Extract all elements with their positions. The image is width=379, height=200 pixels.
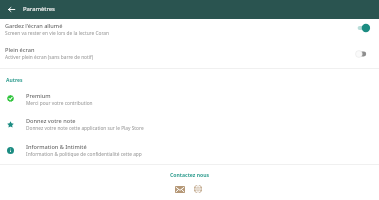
staticText: Donnez votre note [26, 117, 76, 125]
staticText: Premium [26, 92, 51, 100]
staticText: Information & Intimité [26, 143, 87, 151]
button[interactable]: Toggle on [352, 20, 374, 36]
staticText: Contactez nous [0, 172, 379, 179]
staticText: Information & politique de confidentiali… [26, 151, 142, 158]
button[interactable]: Information & Intimité [26, 143, 361, 158]
staticText: Donnez votre note cette application sur … [26, 125, 144, 132]
button[interactable]: Toggle off [352, 46, 374, 62]
button[interactable]: Back [4, 2, 18, 16]
button[interactable]: Gardez l'écran allumé [5, 22, 361, 37]
button[interactable]: Send email [173, 182, 187, 196]
staticText: Gardez l'écran allumé [5, 22, 63, 30]
staticText: Autres [6, 77, 23, 84]
button[interactable]: Donnez votre note [26, 117, 361, 132]
button[interactable]: Premium [26, 92, 361, 107]
staticText: Plein écran [5, 46, 35, 54]
staticText: Paramètres [23, 5, 55, 13]
button[interactable]: Open website [191, 182, 205, 196]
staticText: Screen va rester en vie lors de la lectu… [5, 30, 109, 37]
button[interactable]: Plein écran [5, 46, 361, 61]
staticText: Merci pour votre contribution [26, 100, 93, 107]
staticText: Activer plein écran (sans barre de notif… [5, 54, 94, 61]
